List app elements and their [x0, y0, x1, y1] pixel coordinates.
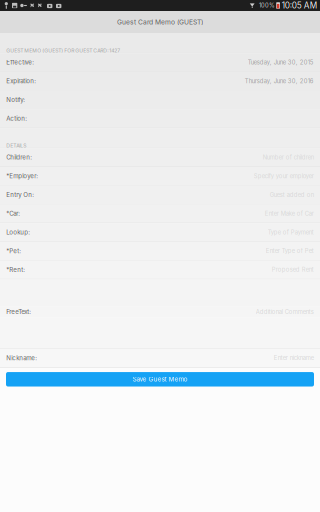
- button[interactable]: Effective:: [0, 53, 320, 72]
- staticText: Enter Type of Pet: [266, 247, 314, 254]
- staticText: Entry On:: [6, 191, 34, 198]
- staticText: *Car:: [6, 210, 20, 217]
- button[interactable]: *Pet:: [0, 242, 320, 261]
- staticText: Number of children: [263, 154, 314, 161]
- staticText: Children:: [6, 154, 32, 161]
- staticText: Proposed Rent: [272, 266, 314, 273]
- staticText: Enter nickname: [274, 354, 314, 361]
- staticText: *Pet:: [6, 247, 21, 255]
- staticText: 10:05 AM: [282, 0, 317, 10]
- button[interactable]: *Car:: [0, 204, 320, 223]
- button[interactable]: Save Guest Memo: [0, 367, 320, 386]
- staticText: Type of Payment: [268, 229, 314, 236]
- button[interactable]: Lookup:: [0, 223, 320, 242]
- staticText: GUEST MEMO (GUEST) FOR GUEST CARD: 1427: [6, 47, 120, 54]
- button[interactable]: Expiration:: [0, 72, 320, 91]
- staticText: Guest Card Memo (GUEST): [117, 18, 203, 26]
- staticText: 100%: [259, 2, 275, 9]
- staticText: Notify:: [6, 96, 25, 103]
- staticText: Save Guest Memo: [132, 375, 187, 383]
- staticText: *Employer:: [6, 172, 38, 180]
- staticText: Expiration:: [6, 77, 36, 85]
- staticText: DETAILS: [6, 143, 26, 149]
- staticText: Guest added on: [270, 191, 314, 198]
- button[interactable]: Children:: [0, 148, 320, 167]
- staticText: *Rent:: [6, 266, 25, 273]
- staticText: Additional Comments: [256, 308, 314, 315]
- staticText: Nickname:: [6, 354, 37, 362]
- button[interactable]: *Rent:: [0, 261, 320, 279]
- staticText: Specify your employer: [254, 173, 314, 180]
- button[interactable]: Notify:: [0, 91, 320, 109]
- button[interactable]: FreeText:: [0, 279, 320, 349]
- staticText: Thursday, June 30, 2016: [245, 77, 314, 85]
- staticText: FreeText:: [6, 308, 31, 315]
- staticText: Effective:: [6, 59, 34, 66]
- button[interactable]: Nickname:: [0, 349, 320, 367]
- staticText: Lookup:: [6, 229, 30, 236]
- staticText: Enter Make of Car: [265, 210, 314, 217]
- button[interactable]: Action:: [0, 109, 320, 128]
- staticText: Action:: [6, 115, 27, 122]
- button[interactable]: *Employer:: [0, 167, 320, 186]
- staticText: Tuesday, June 30, 2015: [248, 59, 314, 66]
- button[interactable]: Entry On:: [0, 186, 320, 204]
